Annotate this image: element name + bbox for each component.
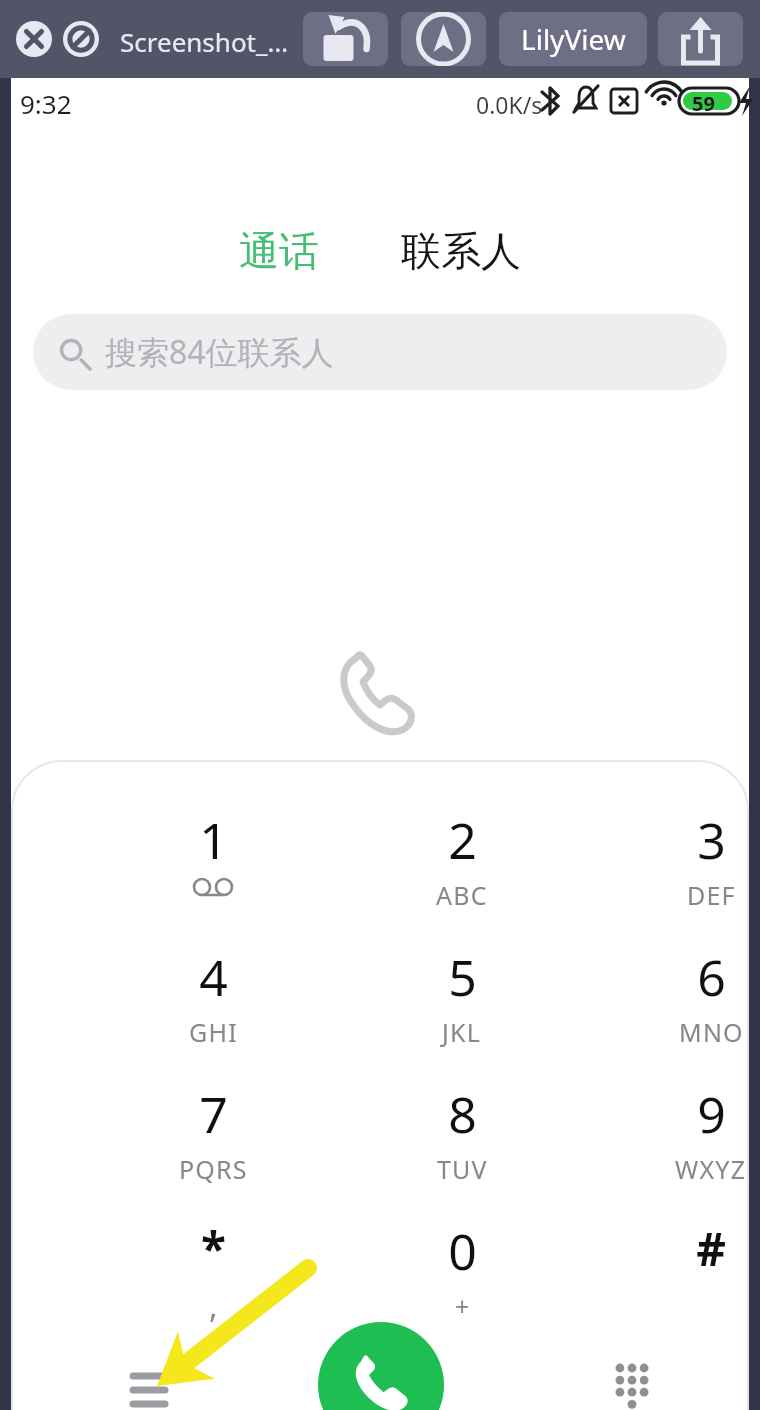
button[interactable]: 8 (380, 1080, 544, 1206)
button[interactable]: Rotate (303, 12, 388, 66)
button[interactable]: 5 (380, 943, 544, 1069)
staticText: 9 (697, 1080, 726, 1148)
button[interactable]: 4 (131, 943, 295, 1069)
staticText: 通话 (239, 226, 319, 276)
staticText: * (201, 1217, 226, 1280)
staticText: 搜索84位联系人 (105, 330, 334, 374)
staticText: 2 (448, 806, 477, 874)
button[interactable]: * (131, 1217, 295, 1343)
button[interactable]: Share (658, 12, 743, 66)
button[interactable]: 通话 (223, 220, 335, 282)
button[interactable]: Call (318, 1322, 444, 1410)
staticText: 59 (692, 90, 715, 117)
button[interactable]: LilyView (499, 12, 647, 66)
staticText: , (209, 1284, 219, 1328)
staticText: LilyView (521, 20, 626, 58)
button[interactable]: 搜索84位联系人 (33, 314, 727, 390)
staticText: 1 (199, 806, 228, 874)
button[interactable]: 2 (380, 806, 544, 932)
staticText: # (696, 1217, 726, 1280)
staticText: TUV (437, 1152, 488, 1186)
staticText: 6 (697, 943, 726, 1011)
button[interactable]: Dialpad (599, 1352, 665, 1410)
staticText: MNO (679, 1015, 744, 1049)
button[interactable]: 7 (131, 1080, 295, 1206)
button[interactable]: 0 (380, 1217, 544, 1343)
staticText: 5 (448, 943, 477, 1011)
staticText: ABC (436, 878, 488, 912)
staticText: JKL (442, 1015, 482, 1049)
staticText: 7 (199, 1080, 228, 1148)
staticText: GHI (189, 1015, 238, 1049)
button[interactable]: Close (16, 21, 52, 57)
staticText: 3 (697, 806, 726, 874)
button[interactable]: 9 (629, 1080, 749, 1206)
button[interactable]: 联系人 (385, 220, 537, 282)
staticText: WXYZ (675, 1152, 747, 1186)
staticText: 8 (448, 1080, 477, 1148)
staticText: PQRS (179, 1152, 248, 1186)
button[interactable]: 6 (629, 943, 749, 1069)
button[interactable]: Reject (63, 21, 99, 57)
button[interactable]: 1 (131, 806, 295, 932)
staticText: 0.0K/s (476, 89, 543, 120)
staticText: 4 (199, 943, 228, 1011)
button[interactable]: Call log menu (116, 1352, 182, 1410)
staticText: Screenshot_… (120, 24, 289, 59)
staticText: + (455, 1289, 471, 1323)
staticText: 联系人 (401, 226, 521, 276)
button[interactable]: 3 (629, 806, 749, 932)
staticText: 9:32 (20, 86, 72, 121)
button[interactable]: Open in app (401, 12, 486, 66)
staticText: Baidu 经验 (576, 1404, 760, 1410)
staticText: 0 (448, 1217, 477, 1285)
staticText: DEF (687, 878, 736, 912)
button[interactable]: # (629, 1217, 749, 1343)
